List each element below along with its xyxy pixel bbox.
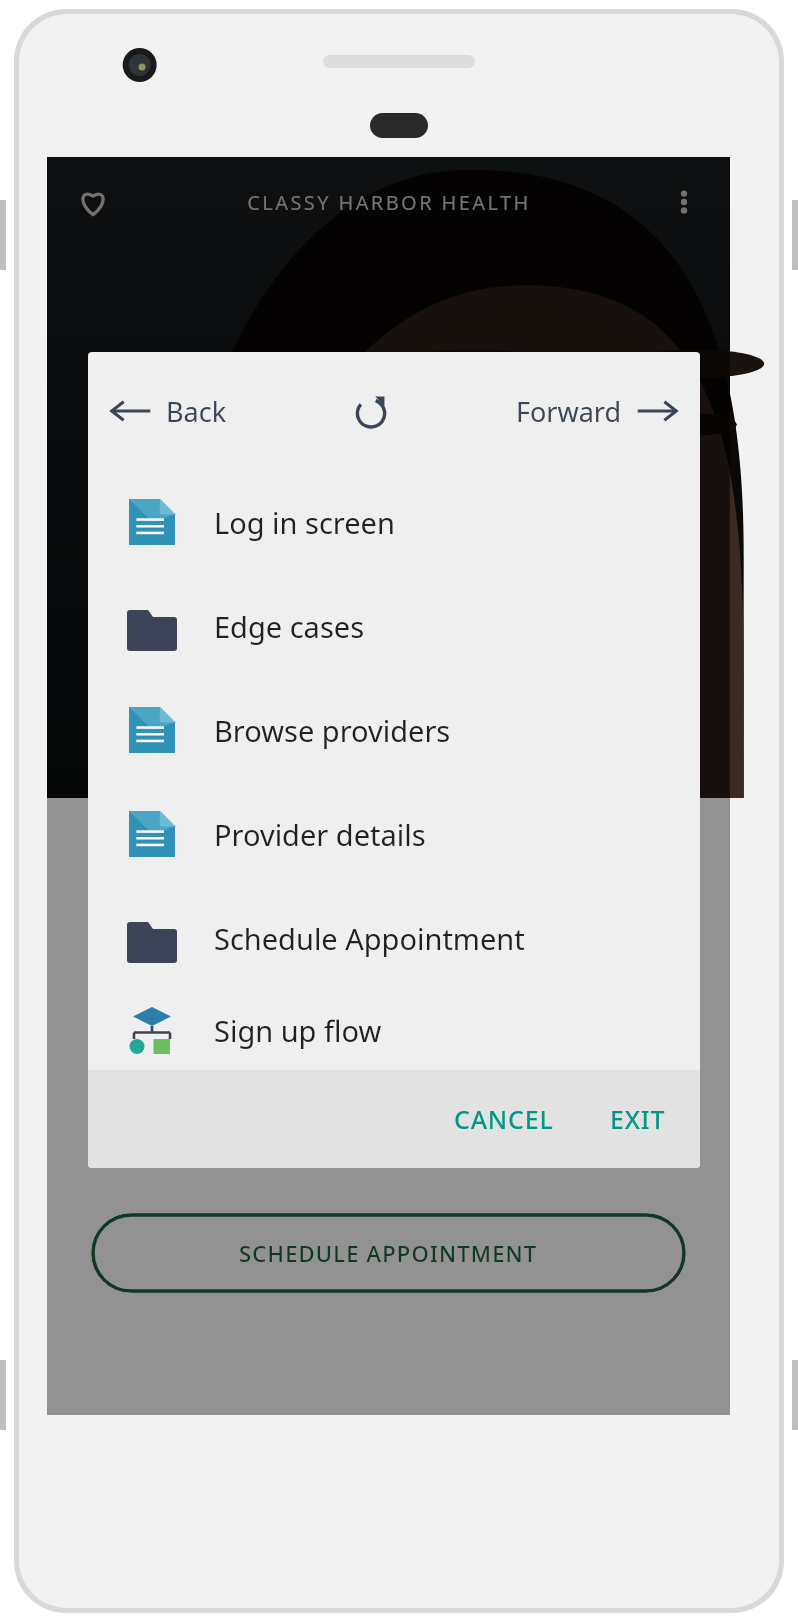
staticText: Log in screen xyxy=(214,503,395,542)
staticText: CANCEL xyxy=(454,1102,554,1136)
staticText: Sign up flow xyxy=(214,1011,382,1050)
staticText: CLASSY HARBOR HEALTH xyxy=(247,189,531,216)
button[interactable]: EXIT xyxy=(600,1090,676,1148)
button[interactable]: Schedule Appointment xyxy=(88,886,700,990)
button[interactable]: Browse providers xyxy=(88,678,700,782)
staticText: Provider details xyxy=(214,815,426,854)
button[interactable]: Log in screen xyxy=(88,470,700,574)
staticText: Edge cases xyxy=(214,607,365,646)
staticText: Browse providers xyxy=(214,711,451,750)
button[interactable]: Back xyxy=(108,388,227,434)
staticText: Forward xyxy=(516,393,622,430)
button[interactable]: Forward xyxy=(516,388,680,434)
staticText: SCHEDULE APPOINTMENT xyxy=(239,1238,538,1268)
staticText: Schedule Appointment xyxy=(214,919,525,958)
button[interactable]: Edge cases xyxy=(88,574,700,678)
button[interactable]: Provider details xyxy=(88,782,700,886)
button[interactable]: Refresh xyxy=(341,381,401,441)
button[interactable]: Favorite xyxy=(65,174,121,230)
button[interactable]: CANCEL xyxy=(436,1090,572,1148)
button[interactable]: More options xyxy=(656,174,712,230)
staticText: Back xyxy=(166,393,227,430)
button[interactable]: Sign up flow xyxy=(88,990,700,1070)
button[interactable]: SCHEDULE APPOINTMENT xyxy=(91,1213,686,1293)
staticText: EXIT xyxy=(610,1102,666,1136)
